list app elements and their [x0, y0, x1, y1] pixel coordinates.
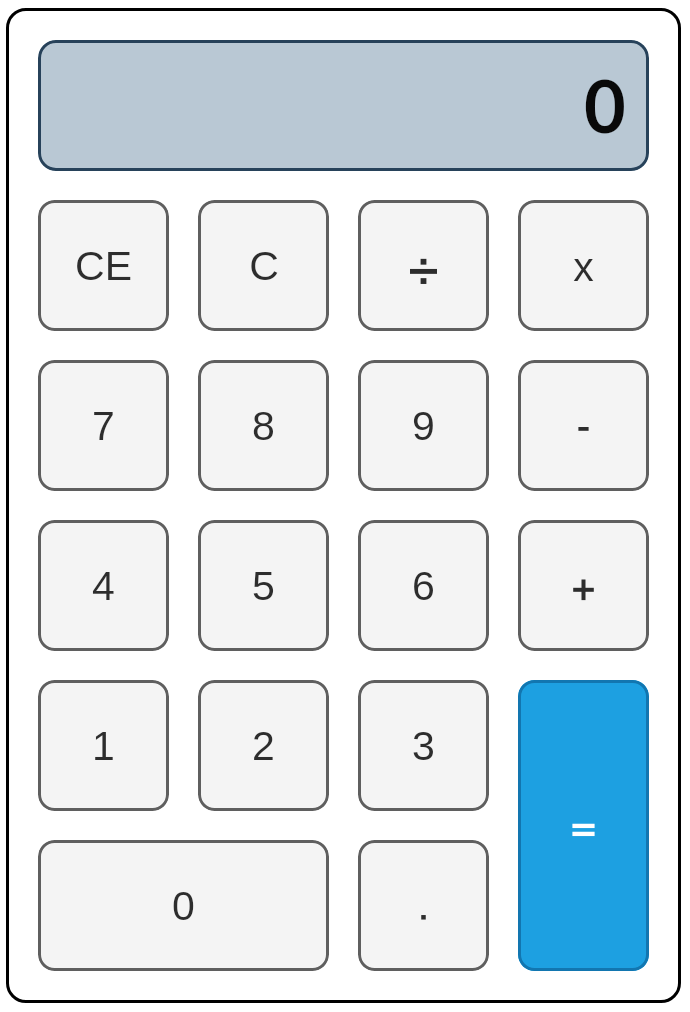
button[interactable]: Equals: [518, 680, 649, 971]
staticText: C: [249, 243, 279, 289]
button[interactable]: Plus: [518, 520, 649, 651]
button[interactable]: 2: [198, 680, 329, 811]
staticText: 8: [252, 403, 275, 449]
button[interactable]: Display, 0: [38, 40, 649, 171]
button[interactable]: Divide: [358, 200, 489, 331]
button[interactable]: 6: [358, 520, 489, 651]
button[interactable]: 3: [358, 680, 489, 811]
button[interactable]: Decimal point: [358, 840, 489, 971]
button[interactable]: 0: [38, 840, 329, 971]
button[interactable]: 9: [358, 360, 489, 491]
button[interactable]: Minus: [518, 360, 649, 491]
staticText: 9: [412, 403, 435, 449]
button[interactable]: 5: [198, 520, 329, 651]
staticText: 5: [252, 563, 275, 609]
staticText: 4: [92, 563, 115, 609]
staticText: 1: [92, 723, 115, 769]
staticText: CE: [75, 243, 132, 289]
staticText: 2: [252, 723, 275, 769]
staticText: 6: [412, 563, 435, 609]
staticText: 0: [584, 62, 626, 148]
button[interactable]: Clear entry: [38, 200, 169, 331]
staticText: 0: [172, 883, 195, 929]
button[interactable]: Clear: [198, 200, 329, 331]
button[interactable]: 7: [38, 360, 169, 491]
button[interactable]: 1: [38, 680, 169, 811]
button[interactable]: 4: [38, 520, 169, 651]
button[interactable]: 8: [198, 360, 329, 491]
staticText: 3: [412, 723, 435, 769]
button[interactable]: Multiply: [518, 200, 649, 331]
staticText: 7: [92, 403, 115, 449]
staticText: x: [573, 244, 594, 290]
